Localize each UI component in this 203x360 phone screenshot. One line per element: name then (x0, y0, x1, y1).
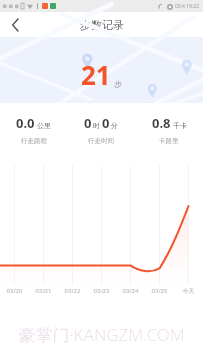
staticText: 行走时间 (88, 137, 114, 145)
staticText: 卡路里 (159, 137, 179, 145)
staticText: 03/21 (29, 287, 58, 295)
staticText: 03/20 (0, 287, 29, 295)
staticText: 03/24 (116, 287, 145, 295)
staticText: 03:4 19:22 (175, 3, 200, 10)
staticText: 21 (81, 57, 111, 92)
staticText: 时 (93, 121, 100, 130)
staticText: 0 (102, 114, 110, 132)
staticText: 步数记录 (80, 18, 124, 32)
staticText: 公里 (37, 121, 51, 130)
staticText: 今天 (174, 287, 203, 295)
button[interactable]: Back (0, 12, 30, 37)
staticText: 0.8 (152, 114, 171, 132)
staticText: 03/25 (145, 287, 174, 295)
button[interactable]: 0.8 (135, 114, 203, 145)
staticText: 分 (111, 121, 118, 130)
staticText: 03/22 (58, 287, 87, 295)
staticText: 豪掌门·KANGZM.COM (18, 323, 185, 346)
staticText: 0 (84, 114, 92, 132)
staticText: 0.0 (16, 114, 35, 132)
staticText: 步 (114, 79, 122, 89)
staticText: 行走路程 (21, 137, 47, 145)
button[interactable]: 0.0 (0, 114, 67, 145)
button[interactable]: 0 (67, 114, 135, 145)
staticText: 千卡 (173, 121, 187, 130)
staticText: 03/23 (87, 287, 116, 295)
